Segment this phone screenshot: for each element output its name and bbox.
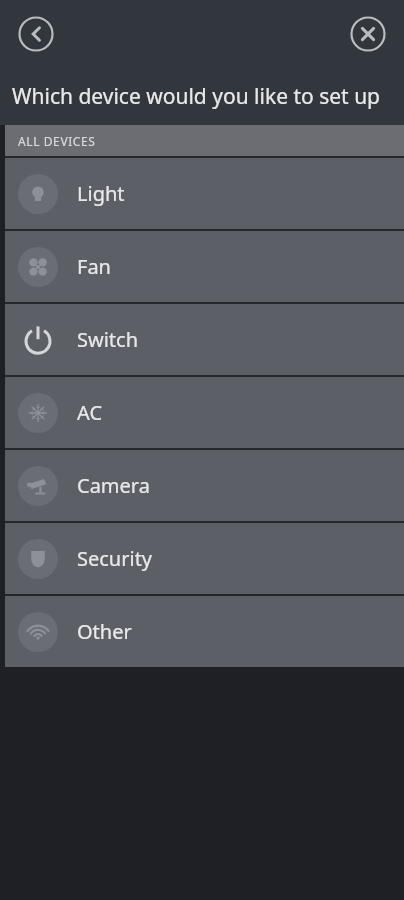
button[interactable]: Close — [348, 14, 388, 54]
button[interactable]: Switch — [5, 304, 404, 375]
staticText: Light — [77, 180, 125, 207]
button[interactable]: Light — [5, 158, 404, 229]
staticText: ALL DEVICES — [18, 133, 96, 149]
staticText: Security — [77, 545, 153, 572]
staticText: Other — [77, 618, 132, 645]
button[interactable]: Security — [5, 523, 404, 594]
staticText: AC — [77, 399, 103, 426]
button[interactable]: Back — [16, 14, 56, 54]
staticText: Fan — [77, 253, 111, 280]
button[interactable]: Camera — [5, 450, 404, 521]
button[interactable]: AC — [5, 377, 404, 448]
button[interactable]: Fan — [5, 231, 404, 302]
staticText: Which device would you like to set up — [12, 82, 381, 111]
staticText: Camera — [77, 472, 150, 499]
button[interactable]: Other — [5, 596, 404, 667]
staticText: Switch — [77, 326, 139, 353]
